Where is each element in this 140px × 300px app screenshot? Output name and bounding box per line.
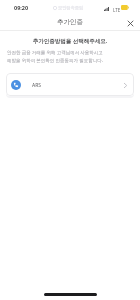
staticText: 보안접속중입 — [58, 5, 84, 10]
staticText: 09:20 — [14, 4, 29, 11]
staticText: ARS — [32, 82, 42, 89]
staticText: 추가인증 — [57, 18, 83, 26]
button[interactable]: Close — [123, 15, 137, 29]
staticText: 안전한 금융 거래를 위해 고객님께서 사용하시고 예방을 위하여 본인확인 인… — [7, 49, 103, 63]
button[interactable]: ARS — [6, 73, 134, 96]
staticText: 추가인증방법을 선택해주세요. — [0, 37, 140, 45]
staticText: LTE — [113, 7, 121, 13]
